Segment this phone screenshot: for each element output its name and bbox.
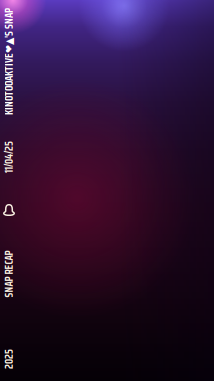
staticText: SNAP RECAP	[0, 266, 32, 282]
staticText: 11/04/25	[0, 149, 25, 165]
staticText: KINOTOOAKTIVE❤▲'S SNAP	[0, 53, 62, 70]
staticText: 2025	[0, 351, 19, 367]
